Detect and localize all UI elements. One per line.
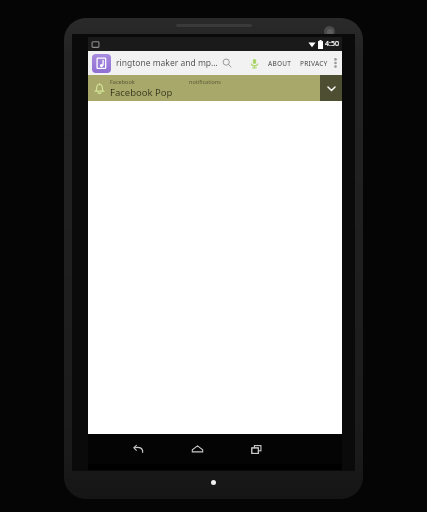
button[interactable]: Voice search: [246, 51, 262, 75]
button[interactable]: ABOUT: [268, 51, 292, 75]
button[interactable]: App icon: [92, 54, 111, 73]
button[interactable]: Back: [125, 436, 151, 462]
button[interactable]: Facebook: [88, 75, 342, 101]
button[interactable]: Recent apps: [243, 436, 269, 462]
staticText: Facebook Pop: [110, 86, 173, 99]
staticText: Facebook: [110, 78, 135, 85]
button[interactable]: Home: [184, 436, 210, 462]
staticText: 4:50: [325, 39, 339, 49]
button[interactable]: More options: [328, 51, 342, 75]
button[interactable]: PRIVACY: [300, 51, 328, 75]
button[interactable]: Expand: [320, 75, 342, 101]
staticText: ABOUT: [268, 59, 292, 68]
staticText: notifications: [189, 78, 221, 85]
staticText: ringtone maker and mp…: [116, 57, 218, 69]
staticText: PRIVACY: [300, 59, 328, 68]
button[interactable]: Search: [218, 51, 236, 75]
